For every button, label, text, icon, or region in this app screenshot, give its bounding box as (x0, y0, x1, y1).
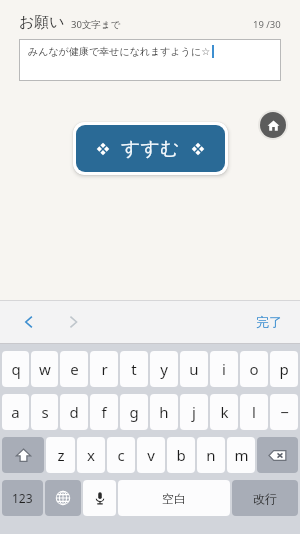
staticText: x (87, 445, 95, 465)
button[interactable]: Next field (56, 305, 90, 339)
button[interactable]: n (197, 437, 225, 473)
button[interactable]: Dictation (83, 480, 116, 516)
button[interactable]: z (46, 437, 75, 473)
button[interactable]: p (270, 351, 298, 387)
button[interactable]: c (107, 437, 135, 473)
button[interactable]: Shift (2, 437, 44, 473)
button[interactable]: b (167, 437, 195, 473)
staticText: q (11, 359, 21, 379)
button[interactable]: o (240, 351, 268, 387)
button[interactable]: Home (260, 112, 286, 138)
staticText: − (280, 402, 289, 422)
staticText: u (189, 359, 199, 379)
button[interactable]: g (120, 394, 148, 430)
button[interactable]: x (77, 437, 105, 473)
button[interactable]: m (227, 437, 255, 473)
button[interactable]: d (60, 394, 88, 430)
button[interactable]: Backspace (257, 437, 298, 473)
button[interactable]: q (2, 351, 29, 387)
button[interactable]: l (240, 394, 268, 430)
staticText: みんなが健康で幸せになれますように☆ (28, 45, 211, 58)
staticText: h (159, 402, 169, 422)
button[interactable]: v (137, 437, 165, 473)
staticText: f (101, 402, 107, 422)
button[interactable]: 空白 (118, 480, 230, 516)
button[interactable]: a (2, 394, 29, 430)
staticText: y (160, 359, 168, 379)
button[interactable]: u (180, 351, 208, 387)
staticText: v (147, 445, 155, 465)
button[interactable]: 改行 (232, 480, 298, 516)
staticText: i (222, 359, 226, 379)
staticText: n (206, 445, 216, 465)
staticText: d (69, 402, 79, 422)
staticText: 19 /30 (253, 18, 281, 31)
button[interactable]: すすむ (76, 125, 225, 172)
staticText: k (220, 402, 229, 422)
button[interactable]: k (210, 394, 238, 430)
staticText: お願い (19, 13, 65, 32)
staticText: b (176, 445, 186, 465)
staticText: e (70, 359, 79, 379)
staticText: 123 (12, 490, 33, 506)
staticText: c (117, 445, 125, 465)
button[interactable]: みんなが健康で幸せになれますように☆ (19, 39, 281, 81)
button[interactable]: y (150, 351, 178, 387)
button[interactable]: w (31, 351, 58, 387)
button[interactable]: h (150, 394, 178, 430)
button[interactable]: − (270, 394, 298, 430)
staticText: t (131, 359, 137, 379)
staticText: p (279, 359, 289, 379)
staticText: l (252, 402, 256, 422)
staticText: o (249, 359, 259, 379)
button[interactable]: r (90, 351, 118, 387)
button[interactable]: j (180, 394, 208, 430)
staticText: z (57, 445, 65, 465)
staticText: s (41, 402, 49, 422)
staticText: 完了 (256, 314, 282, 330)
staticText: g (129, 402, 139, 422)
button[interactable]: Change keyboard (45, 480, 81, 516)
staticText: 空白 (162, 491, 186, 506)
button[interactable]: t (120, 351, 148, 387)
button[interactable]: s (31, 394, 58, 430)
staticText: a (11, 402, 20, 422)
staticText: 改行 (253, 491, 277, 506)
button[interactable]: Previous field (12, 305, 46, 339)
staticText: r (101, 359, 108, 379)
button[interactable]: f (90, 394, 118, 430)
button[interactable]: Numbers (2, 480, 43, 516)
staticText: w (39, 359, 51, 379)
staticText: j (192, 402, 196, 422)
staticText: 30文字まで (71, 18, 121, 31)
staticText: m (234, 445, 249, 465)
button[interactable]: 完了 (250, 308, 288, 336)
staticText: すすむ (121, 137, 180, 161)
button[interactable]: i (210, 351, 238, 387)
button[interactable]: e (60, 351, 88, 387)
